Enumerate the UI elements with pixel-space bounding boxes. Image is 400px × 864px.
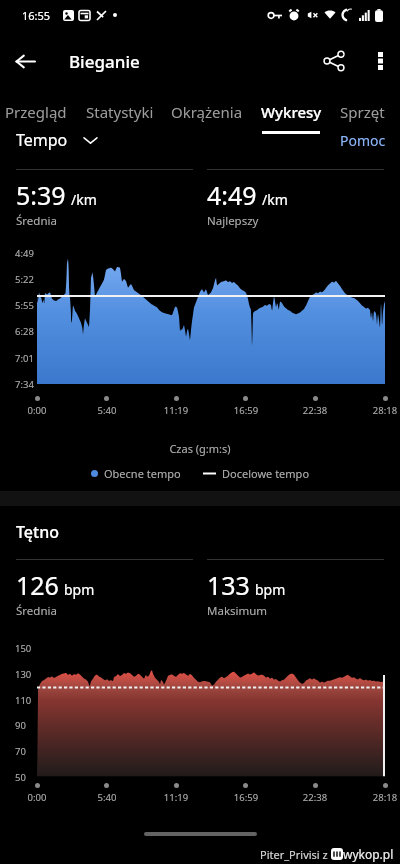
staticText: 5:40 xyxy=(87,791,127,804)
button[interactable]: Tempo xyxy=(16,129,97,151)
staticText: Bieganie xyxy=(69,50,140,73)
staticText: 11:19 xyxy=(156,404,196,417)
staticText: 50 xyxy=(15,771,26,784)
staticText: 133 xyxy=(207,568,250,602)
staticText: 5:55 xyxy=(15,299,34,312)
staticText: 22:38 xyxy=(295,404,335,417)
staticText: 11:19 xyxy=(156,791,196,804)
staticText: Statystyki xyxy=(86,102,154,122)
staticText: 5:39 xyxy=(16,178,66,212)
button[interactable]: Statystyki xyxy=(77,92,162,136)
button[interactable]: More options xyxy=(360,41,400,81)
staticText: Średnia xyxy=(16,603,57,619)
button[interactable]: Przegląd xyxy=(0,92,77,136)
staticText: 7:34 xyxy=(15,378,34,391)
staticText: 16:59 xyxy=(226,404,266,417)
staticText: 150 xyxy=(15,642,32,655)
staticText: 28:18 xyxy=(365,404,400,417)
staticText: Piter_Privisi z xyxy=(260,847,331,862)
staticText: 130 xyxy=(15,668,32,681)
staticText: 0:00 xyxy=(17,404,57,417)
staticText: Docelowe tempo xyxy=(222,466,310,481)
staticText: 16:59 xyxy=(226,791,266,804)
button[interactable]: Back xyxy=(0,36,50,86)
staticText: Pomoc xyxy=(340,131,386,150)
staticText: 70 xyxy=(15,745,26,758)
staticText: /km xyxy=(262,190,288,209)
staticText: Tempo xyxy=(16,129,68,151)
staticText: 7:01 xyxy=(15,352,34,365)
staticText: 22:38 xyxy=(295,791,335,804)
staticText: Wykresy xyxy=(261,102,322,122)
staticText: 28:18 xyxy=(365,791,400,804)
staticText: wykop.pl xyxy=(343,846,394,862)
staticText: /km xyxy=(71,190,97,209)
staticText: bpm xyxy=(255,580,286,599)
staticText: Najlepszy xyxy=(207,213,259,229)
staticText: bpm xyxy=(64,580,95,599)
button[interactable]: Okrążenia xyxy=(162,92,251,136)
button[interactable]: Sprzęt xyxy=(331,92,394,136)
staticText: 4:49 xyxy=(207,178,257,212)
staticText: 4:49 xyxy=(15,247,34,260)
staticText: Tętno xyxy=(16,521,59,543)
staticText: 90 xyxy=(15,719,26,732)
staticText: 5:40 xyxy=(87,404,127,417)
staticText: 110 xyxy=(15,694,32,707)
button[interactable]: Pomoc xyxy=(340,131,386,150)
staticText: Obecne tempo xyxy=(104,466,181,481)
staticText: Sprzęt xyxy=(340,102,385,122)
button[interactable]: Share xyxy=(312,39,356,83)
button[interactable]: Wykresy xyxy=(251,92,331,136)
staticText: Okrążenia xyxy=(171,102,243,122)
staticText: 6:28 xyxy=(15,325,34,338)
staticText: Maksimum xyxy=(207,603,268,619)
staticText: Przegląd xyxy=(5,102,67,122)
staticText: Średnia xyxy=(16,213,57,229)
staticText: 16:55 xyxy=(22,8,51,23)
staticText: 5:22 xyxy=(15,273,34,286)
staticText: 0:00 xyxy=(17,791,57,804)
staticText: 126 xyxy=(16,568,59,602)
staticText: Czas (g:m:s) xyxy=(0,441,400,456)
